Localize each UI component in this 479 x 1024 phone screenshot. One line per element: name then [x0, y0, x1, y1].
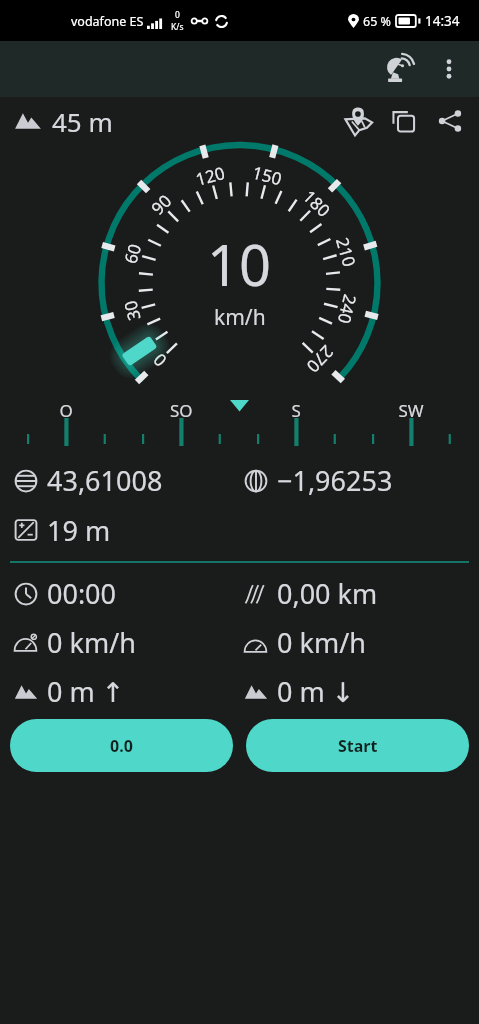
staticText: 19 m — [47, 512, 111, 549]
staticText: 0,00 km — [277, 575, 378, 612]
button[interactable]: 0.0 — [10, 719, 233, 772]
staticText: 0 m ↑ — [47, 673, 125, 710]
staticText: 14:34 — [425, 12, 460, 30]
button[interactable]: GPS satellites — [377, 45, 425, 93]
staticText: 45 m — [52, 104, 113, 139]
staticText: Start — [338, 735, 378, 757]
button[interactable]: Show map — [335, 98, 381, 144]
staticText: 10 — [207, 226, 272, 302]
staticText: −1,96253 — [277, 462, 393, 499]
staticText: vodafone ES — [71, 13, 144, 30]
staticText: 0 — [175, 9, 180, 21]
button[interactable]: Copy coordinates — [381, 98, 427, 144]
staticText: 00:00 — [47, 575, 117, 612]
staticText: 0 km/h — [277, 624, 366, 661]
button[interactable]: Share — [427, 98, 473, 144]
staticText: 0 km/h — [47, 624, 136, 661]
staticText: km/h — [214, 303, 266, 332]
staticText: K/s — [171, 21, 184, 33]
button[interactable]: More options — [425, 45, 473, 93]
staticText: 0 m ↓ — [277, 673, 355, 710]
staticText: 0.0 — [110, 735, 133, 757]
staticText: 65 % — [363, 13, 391, 30]
staticText: 43,61008 — [47, 462, 163, 499]
button[interactable]: Start — [246, 719, 469, 772]
